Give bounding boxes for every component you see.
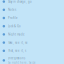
staticText: Stay in charge, go (8, 0, 32, 3)
staticText: Night mode (8, 33, 25, 36)
button[interactable]: Profile (0, 14, 64, 22)
button[interactable]: Take, see it, se (0, 38, 64, 47)
button[interactable]: That, see it, s (0, 47, 64, 55)
staticText: So right here. Seize (8, 61, 36, 64)
button[interactable]: Lock & Go (0, 22, 64, 30)
button[interactable]: Integrations (0, 55, 64, 64)
button[interactable]: Stay in charge, go (0, 0, 64, 6)
staticText: Notes (8, 8, 16, 11)
staticText: That, see it, s (8, 49, 26, 52)
button[interactable]: Notes (0, 6, 64, 14)
staticText: Lock & Go (8, 24, 21, 28)
staticText: Integrations (8, 56, 25, 60)
staticText: Profile (8, 16, 18, 20)
button[interactable]: Night mode (0, 30, 64, 38)
staticText: Take, see it, se (8, 41, 28, 44)
